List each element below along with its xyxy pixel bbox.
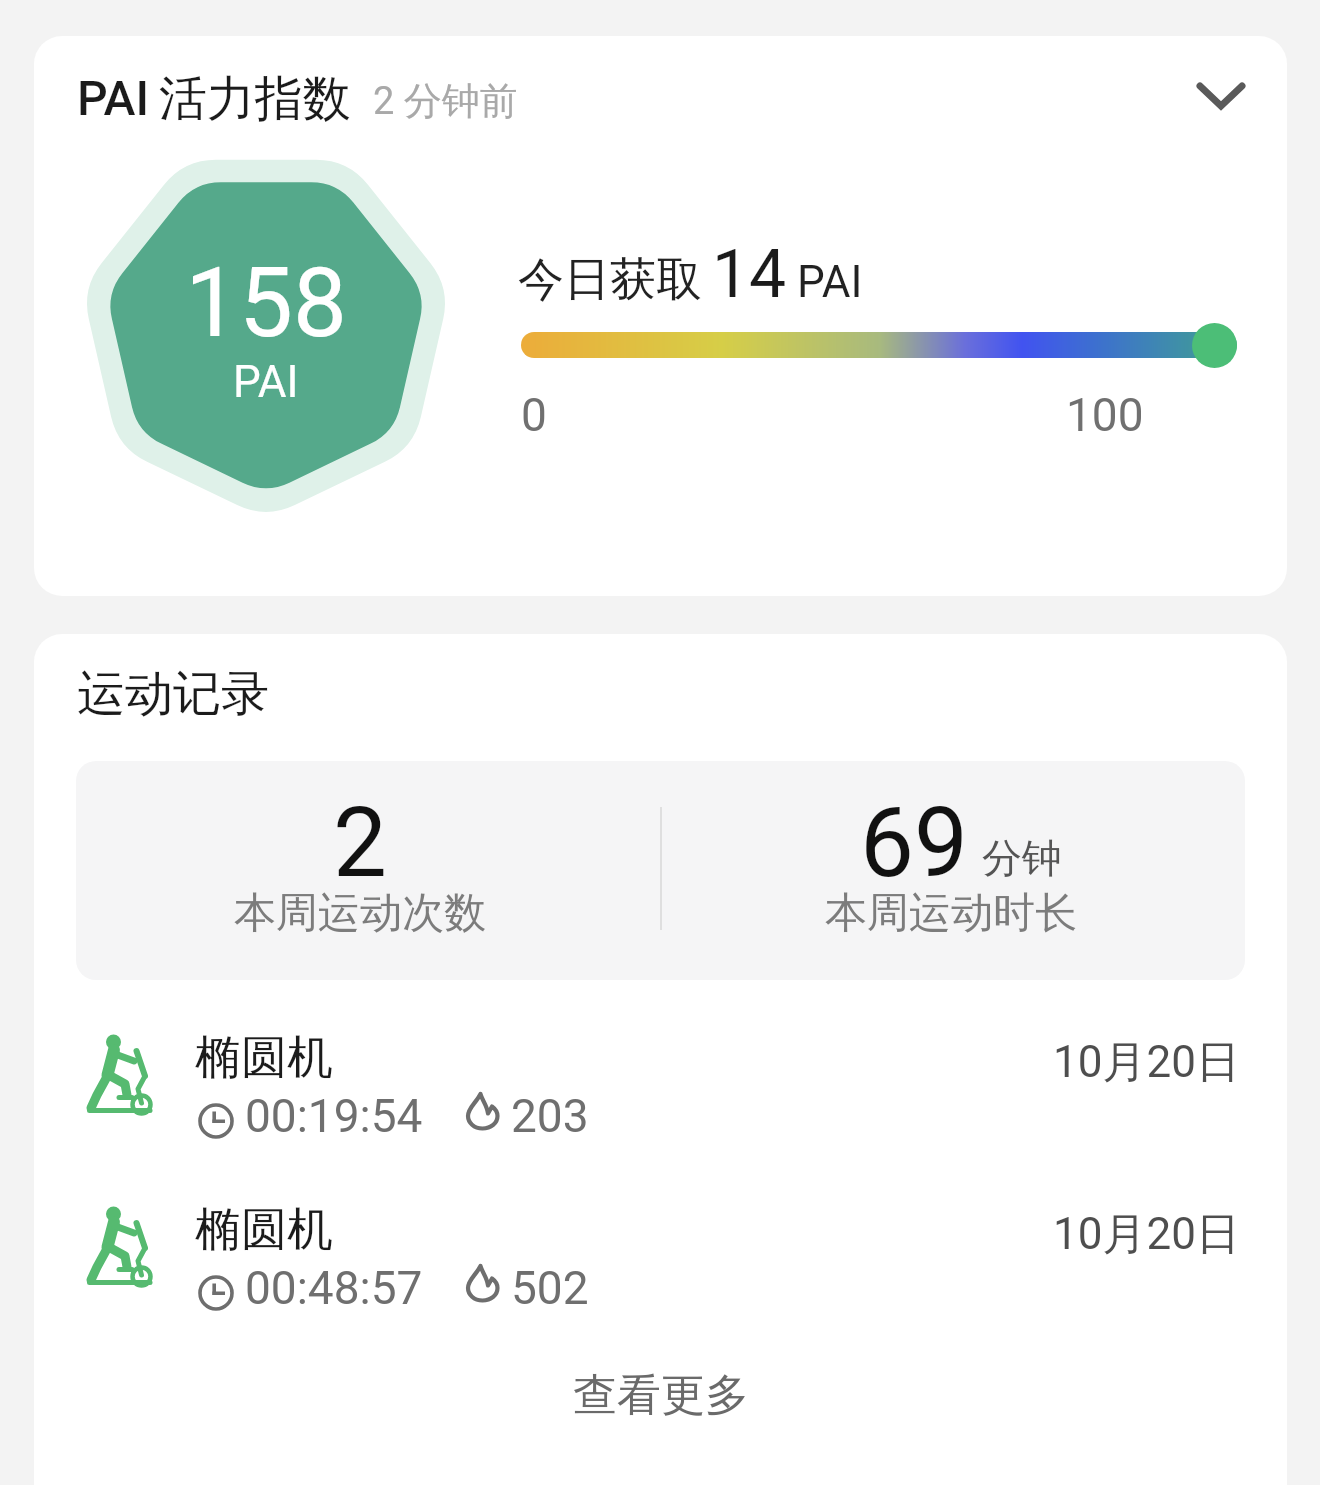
staticText: 本周运动次数 [234, 887, 486, 940]
staticText: 2 分钟前 [373, 77, 518, 125]
staticText: 14 [712, 236, 787, 313]
staticText: 203 [511, 1089, 589, 1143]
staticText: 运动记录 [77, 664, 269, 724]
button[interactable]: 查看更多 [34, 1362, 1287, 1428]
staticText: 本周运动时长 [825, 887, 1077, 940]
staticText: PAI [797, 256, 863, 308]
button[interactable]: 椭圆机 [34, 1023, 1287, 1183]
staticText: 00:48:57 [245, 1261, 423, 1315]
staticText: 502 [511, 1261, 589, 1315]
staticText: 今日获取 [518, 251, 702, 309]
staticText: 分钟 [982, 833, 1062, 883]
staticText: 椭圆机 [195, 1201, 333, 1259]
staticText: 69 [860, 787, 968, 897]
staticText: PAI [233, 356, 299, 408]
staticText: 查看更多 [573, 1368, 749, 1423]
staticText: 0 [521, 388, 547, 442]
staticText: 100 [1066, 388, 1144, 442]
staticText: 10月20日 [1053, 1207, 1240, 1262]
button[interactable]: 2 [76, 761, 1245, 980]
button[interactable] [1194, 76, 1250, 116]
staticText: PAI 活力指数 [77, 69, 351, 129]
button[interactable]: PAI 活力指数 [34, 36, 1287, 596]
staticText: 00:19:54 [245, 1089, 423, 1143]
staticText: 椭圆机 [195, 1029, 333, 1087]
staticText: 10月20日 [1053, 1035, 1240, 1090]
staticText: 2 [333, 787, 387, 897]
staticText: 158 [185, 247, 347, 360]
button[interactable]: 椭圆机 [34, 1195, 1287, 1355]
